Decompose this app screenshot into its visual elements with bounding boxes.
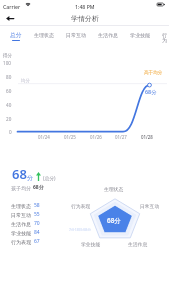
staticText: Carrier bbox=[3, 3, 21, 10]
staticText: 01/26 bbox=[90, 134, 102, 140]
staticText: 40 bbox=[6, 102, 12, 108]
staticText: 得分 bbox=[3, 53, 13, 59]
staticText: (总分) bbox=[43, 175, 56, 182]
staticText: 100 bbox=[3, 60, 11, 66]
staticText: 01/28 bbox=[141, 134, 153, 140]
staticText: 20 bbox=[6, 116, 12, 122]
staticText: 68分 bbox=[33, 184, 44, 191]
staticText: 01/27 bbox=[115, 134, 127, 140]
staticText: 01/25 bbox=[64, 134, 76, 140]
button[interactable]: 行为 bbox=[156, 25, 169, 45]
staticText: 孩子均分 bbox=[11, 185, 31, 191]
staticText: 60 bbox=[6, 88, 12, 94]
staticText: 生活作息 bbox=[128, 241, 148, 247]
staticText: 7分18日:68分 bbox=[69, 227, 92, 232]
staticText: 日常互动 bbox=[66, 32, 86, 38]
staticText: 生活作息 bbox=[98, 32, 118, 38]
button[interactable]: 生活作息 bbox=[92, 25, 124, 45]
staticText: 均分 bbox=[21, 78, 30, 84]
staticText: 高于均分 bbox=[144, 70, 163, 76]
button[interactable]: Back bbox=[3, 12, 16, 25]
staticText: 生理状态 bbox=[11, 203, 31, 209]
staticText: 70 bbox=[34, 220, 40, 227]
staticText: 55 bbox=[34, 211, 40, 218]
staticText: 行为 bbox=[162, 32, 163, 44]
staticText: 67 bbox=[34, 238, 40, 245]
button[interactable]: 总分 bbox=[0, 25, 28, 45]
staticText: 01/24 bbox=[38, 134, 50, 140]
staticText: 68 bbox=[12, 165, 27, 183]
staticText: 生理状态 bbox=[34, 32, 54, 38]
staticText: 总分 bbox=[10, 32, 22, 39]
staticText: 分 bbox=[27, 174, 33, 182]
staticText: 68分 bbox=[145, 88, 157, 95]
button[interactable]: 日常互动 bbox=[60, 25, 92, 45]
staticText: 学业技能 bbox=[130, 32, 150, 38]
staticText: 学业技能 bbox=[11, 230, 31, 236]
staticText: 1:48 PM bbox=[75, 3, 95, 10]
staticText: 生理状态 bbox=[104, 186, 124, 192]
staticText: 学情分析 bbox=[71, 14, 99, 23]
staticText: 行为表现 bbox=[11, 239, 31, 245]
staticText: 68分 bbox=[107, 216, 121, 225]
staticText: 学业技能 bbox=[81, 241, 101, 247]
staticText: 84 bbox=[34, 229, 40, 236]
staticText: 行为表现 bbox=[71, 203, 91, 209]
button[interactable]: 学业技能 bbox=[124, 25, 156, 45]
staticText: 生活作息 bbox=[11, 221, 31, 227]
button[interactable]: 生理状态 bbox=[28, 25, 60, 45]
staticText: 58 bbox=[34, 202, 40, 209]
staticText: 日常互动 bbox=[11, 212, 31, 218]
staticText: 0 bbox=[9, 129, 12, 135]
staticText: 80 bbox=[6, 74, 12, 80]
staticText: 日常互动 bbox=[140, 203, 160, 209]
